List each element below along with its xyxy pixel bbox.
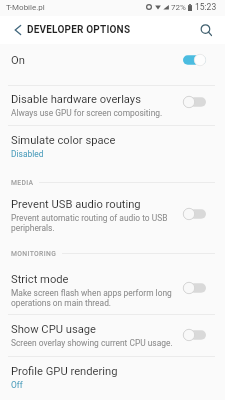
button[interactable]: Simulate color space bbox=[0, 126, 225, 170]
staticText: Disable hardware overlays bbox=[11, 93, 141, 106]
staticText: DEVELOPER OPTIONS bbox=[27, 24, 131, 36]
staticText: Simulate color space bbox=[11, 134, 116, 147]
staticText: Show CPU usage bbox=[11, 323, 96, 336]
staticText: Prevent automatic routing of audio to US… bbox=[11, 213, 168, 233]
staticText: Disabled bbox=[11, 149, 44, 159]
staticText: Prevent USB audio routing bbox=[11, 198, 141, 211]
button[interactable]: Disable hardware overlays bbox=[0, 86, 225, 125]
staticText: MONITORING bbox=[11, 250, 57, 258]
staticText: Strict mode bbox=[11, 273, 69, 286]
staticText: Off bbox=[11, 380, 23, 390]
staticText: 72% bbox=[171, 3, 186, 12]
staticText: MEDIA bbox=[11, 179, 34, 187]
button[interactable]: Strict mode bbox=[0, 263, 225, 314]
button[interactable]: Navigate up bbox=[0, 16, 32, 44]
button[interactable]: Prevent USB audio routing bbox=[0, 191, 225, 242]
staticText: 15:23 bbox=[195, 2, 217, 12]
button[interactable]: Show CPU usage bbox=[0, 315, 225, 356]
staticText: Profile GPU rendering bbox=[11, 365, 118, 378]
button[interactable]: Profile GPU rendering bbox=[0, 357, 225, 400]
staticText: Always use GPU for screen compositing. bbox=[11, 108, 163, 118]
staticText: On bbox=[11, 54, 25, 67]
staticText: T-Mobile.pl bbox=[6, 3, 45, 12]
staticText: Screen overlay showing current CPU usage… bbox=[11, 338, 173, 348]
button[interactable]: Search bbox=[195, 16, 225, 44]
staticText: Make screen flash when apps perform long… bbox=[11, 288, 172, 308]
button[interactable]: On bbox=[0, 44, 225, 85]
